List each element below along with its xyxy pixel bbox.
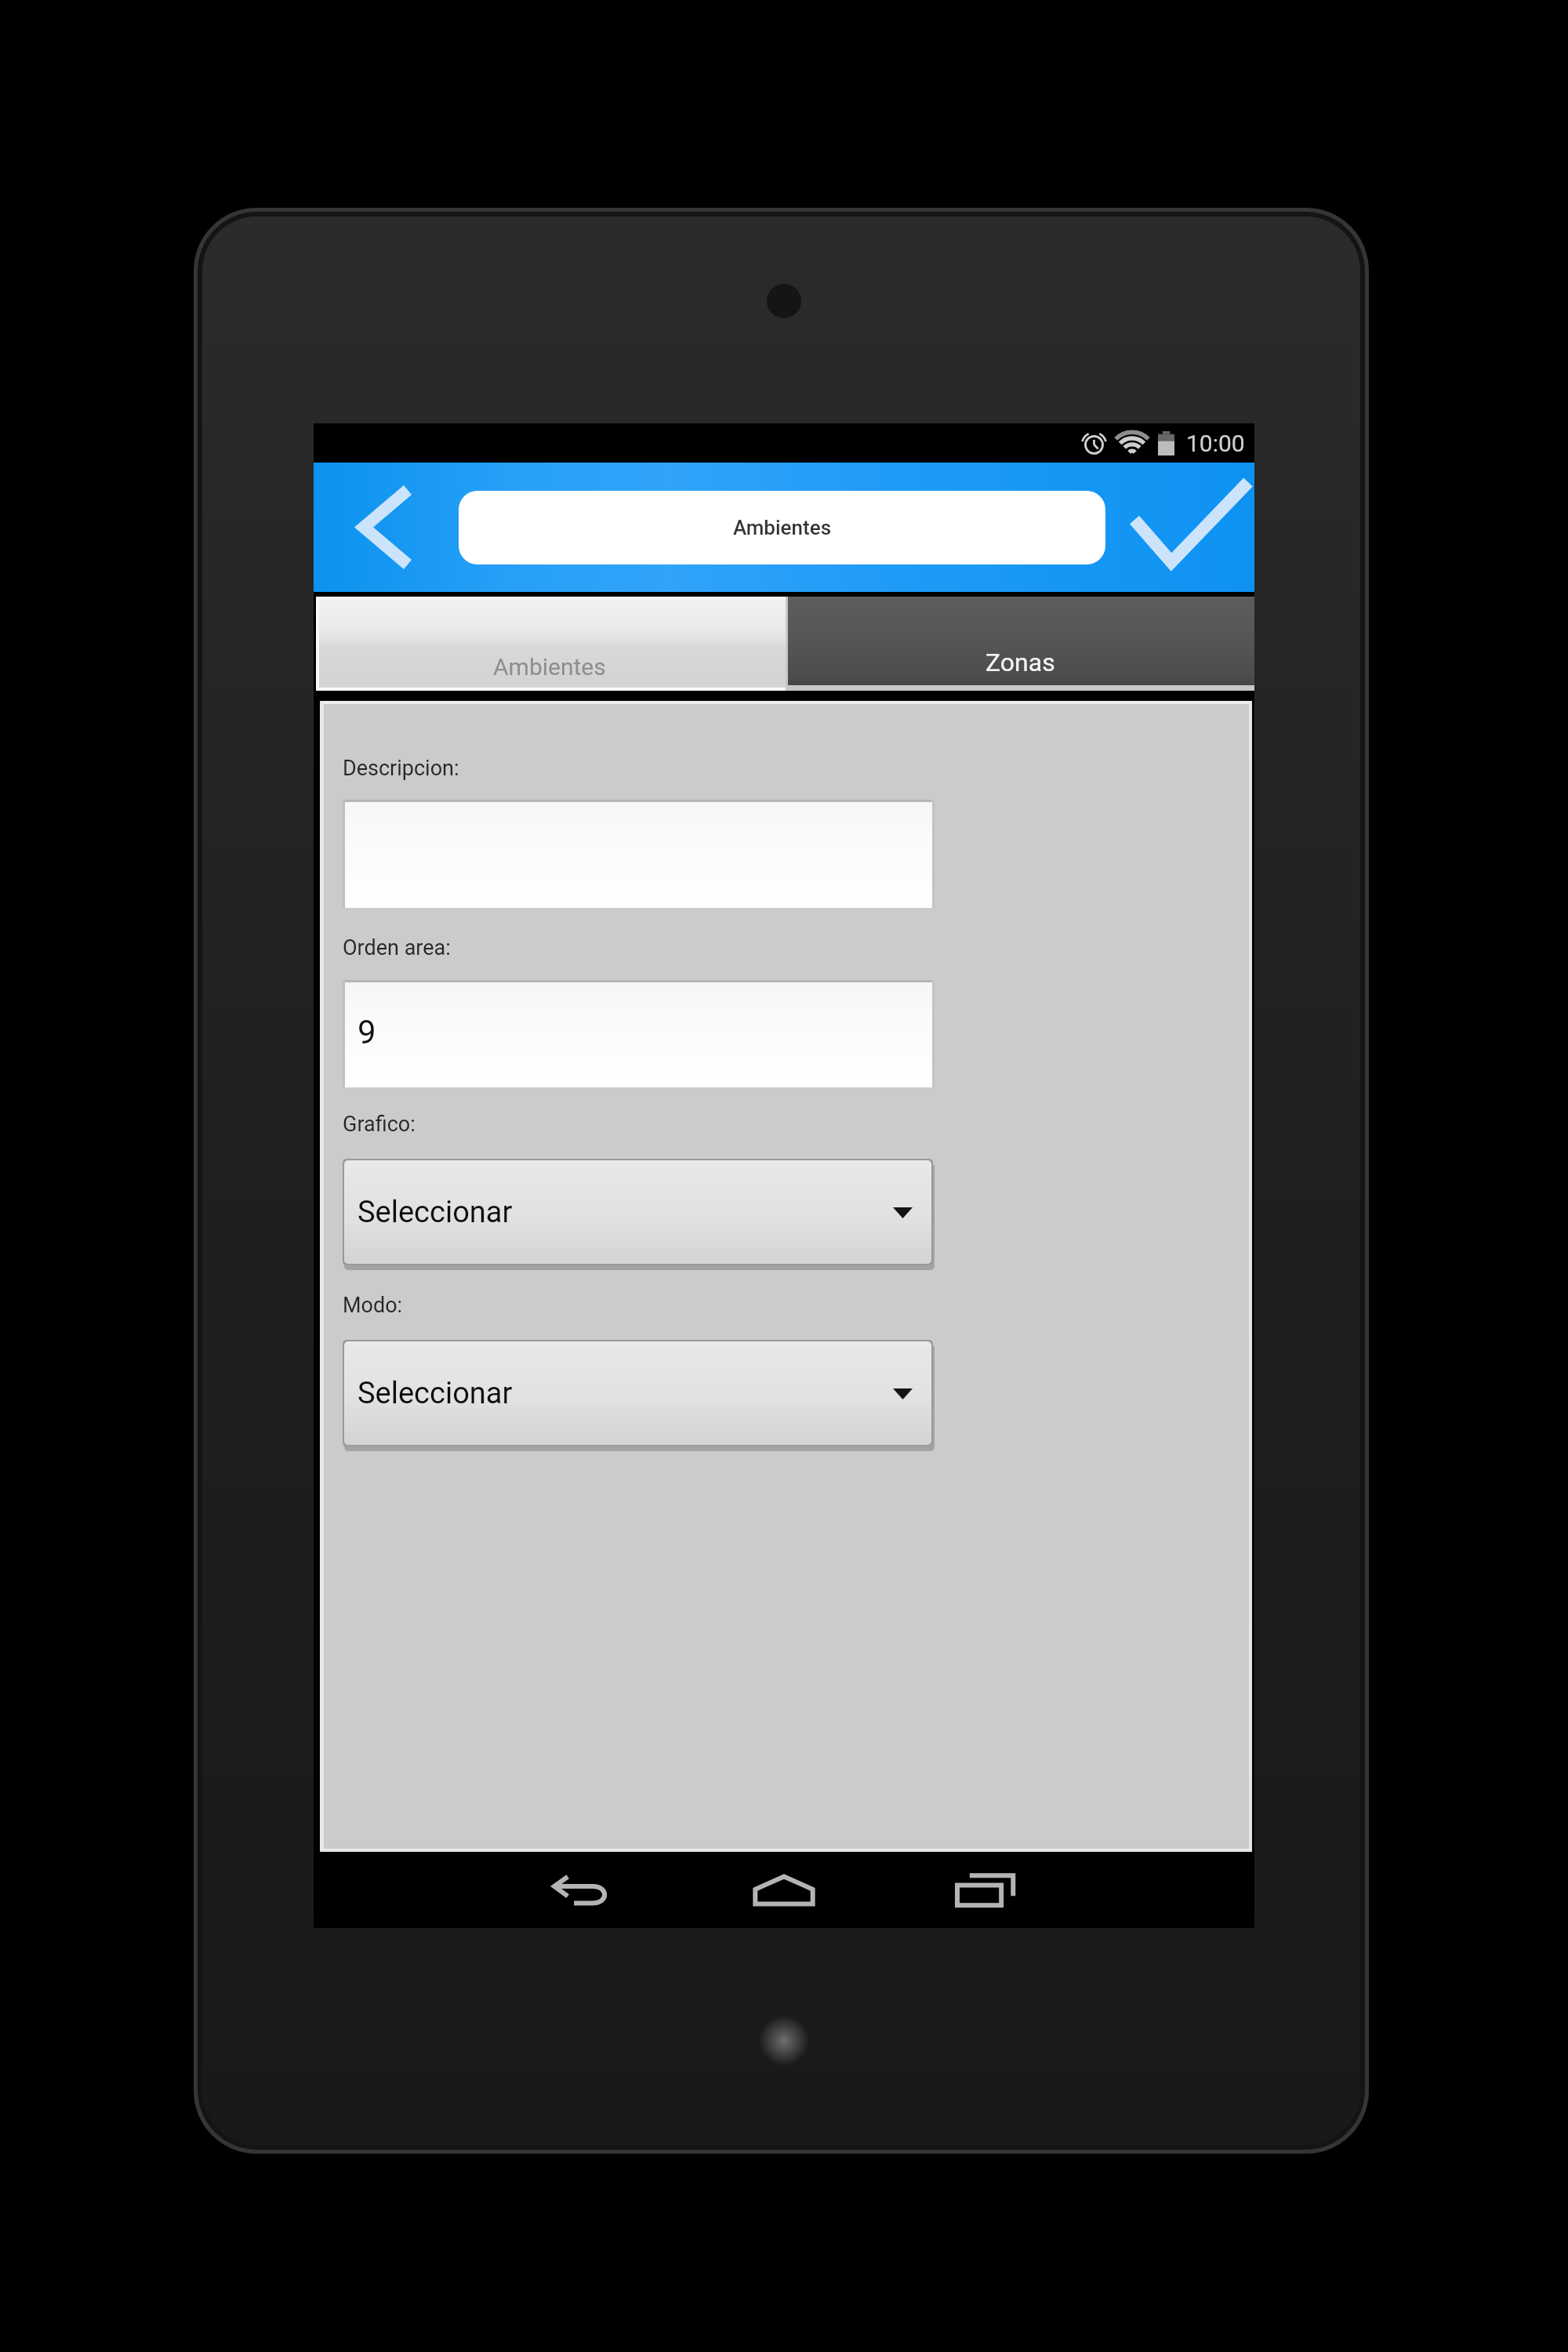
button[interactable]: Back — [314, 463, 459, 592]
staticText: 9 — [358, 1013, 376, 1051]
staticText: Ambientes — [493, 653, 606, 681]
staticText: Descripcion: — [343, 756, 459, 781]
staticText: Seleccionar — [358, 1376, 513, 1411]
button[interactable]: Home — [724, 1852, 844, 1928]
button[interactable]: Ambientes — [316, 597, 786, 691]
button[interactable]: 9 — [343, 980, 935, 1087]
button[interactable]: Confirm — [1105, 463, 1254, 592]
button[interactable]: Seleccionar — [343, 1159, 935, 1269]
staticText: Orden area: — [343, 935, 451, 960]
staticText: Seleccionar — [358, 1195, 513, 1230]
button[interactable]: Zonas — [786, 597, 1254, 691]
button[interactable]: Back — [521, 1852, 640, 1928]
button[interactable] — [343, 800, 935, 908]
staticText: Zonas — [985, 648, 1055, 677]
staticText: Grafico: — [343, 1112, 416, 1137]
staticText: Ambientes — [733, 516, 832, 539]
staticText: 10:00 — [1186, 430, 1245, 457]
staticText: Modo: — [343, 1293, 403, 1318]
button[interactable]: Seleccionar — [343, 1340, 935, 1450]
button[interactable]: Ambientes — [459, 491, 1105, 564]
button[interactable]: Recent apps — [926, 1852, 1045, 1928]
